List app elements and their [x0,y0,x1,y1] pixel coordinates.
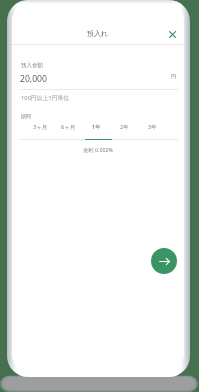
staticText: 2年 [120,123,129,131]
staticText: 期間 [21,113,31,119]
staticText: 6ヶ月 [61,123,76,131]
button[interactable]: 6ヶ月 [54,123,82,135]
button[interactable]: 2年 [110,123,138,135]
button[interactable]: Next [151,248,177,274]
staticText: 金利 0.002% [12,146,184,153]
staticText: 20,000 [20,73,47,85]
staticText: 預入金額 [21,62,43,69]
staticText: 預入れ [87,29,109,38]
staticText: 100円以上1円単位 [21,94,70,102]
button[interactable]: 1年 [82,123,110,135]
button[interactable]: 3ヶ月 [26,123,54,135]
staticText: 3ヶ月 [33,123,48,131]
button[interactable]: Close [169,31,176,38]
staticText: 1年 [92,123,101,131]
button[interactable]: 3年 [138,123,166,135]
staticText: 3年 [148,123,157,131]
staticText: 円 [171,73,176,79]
